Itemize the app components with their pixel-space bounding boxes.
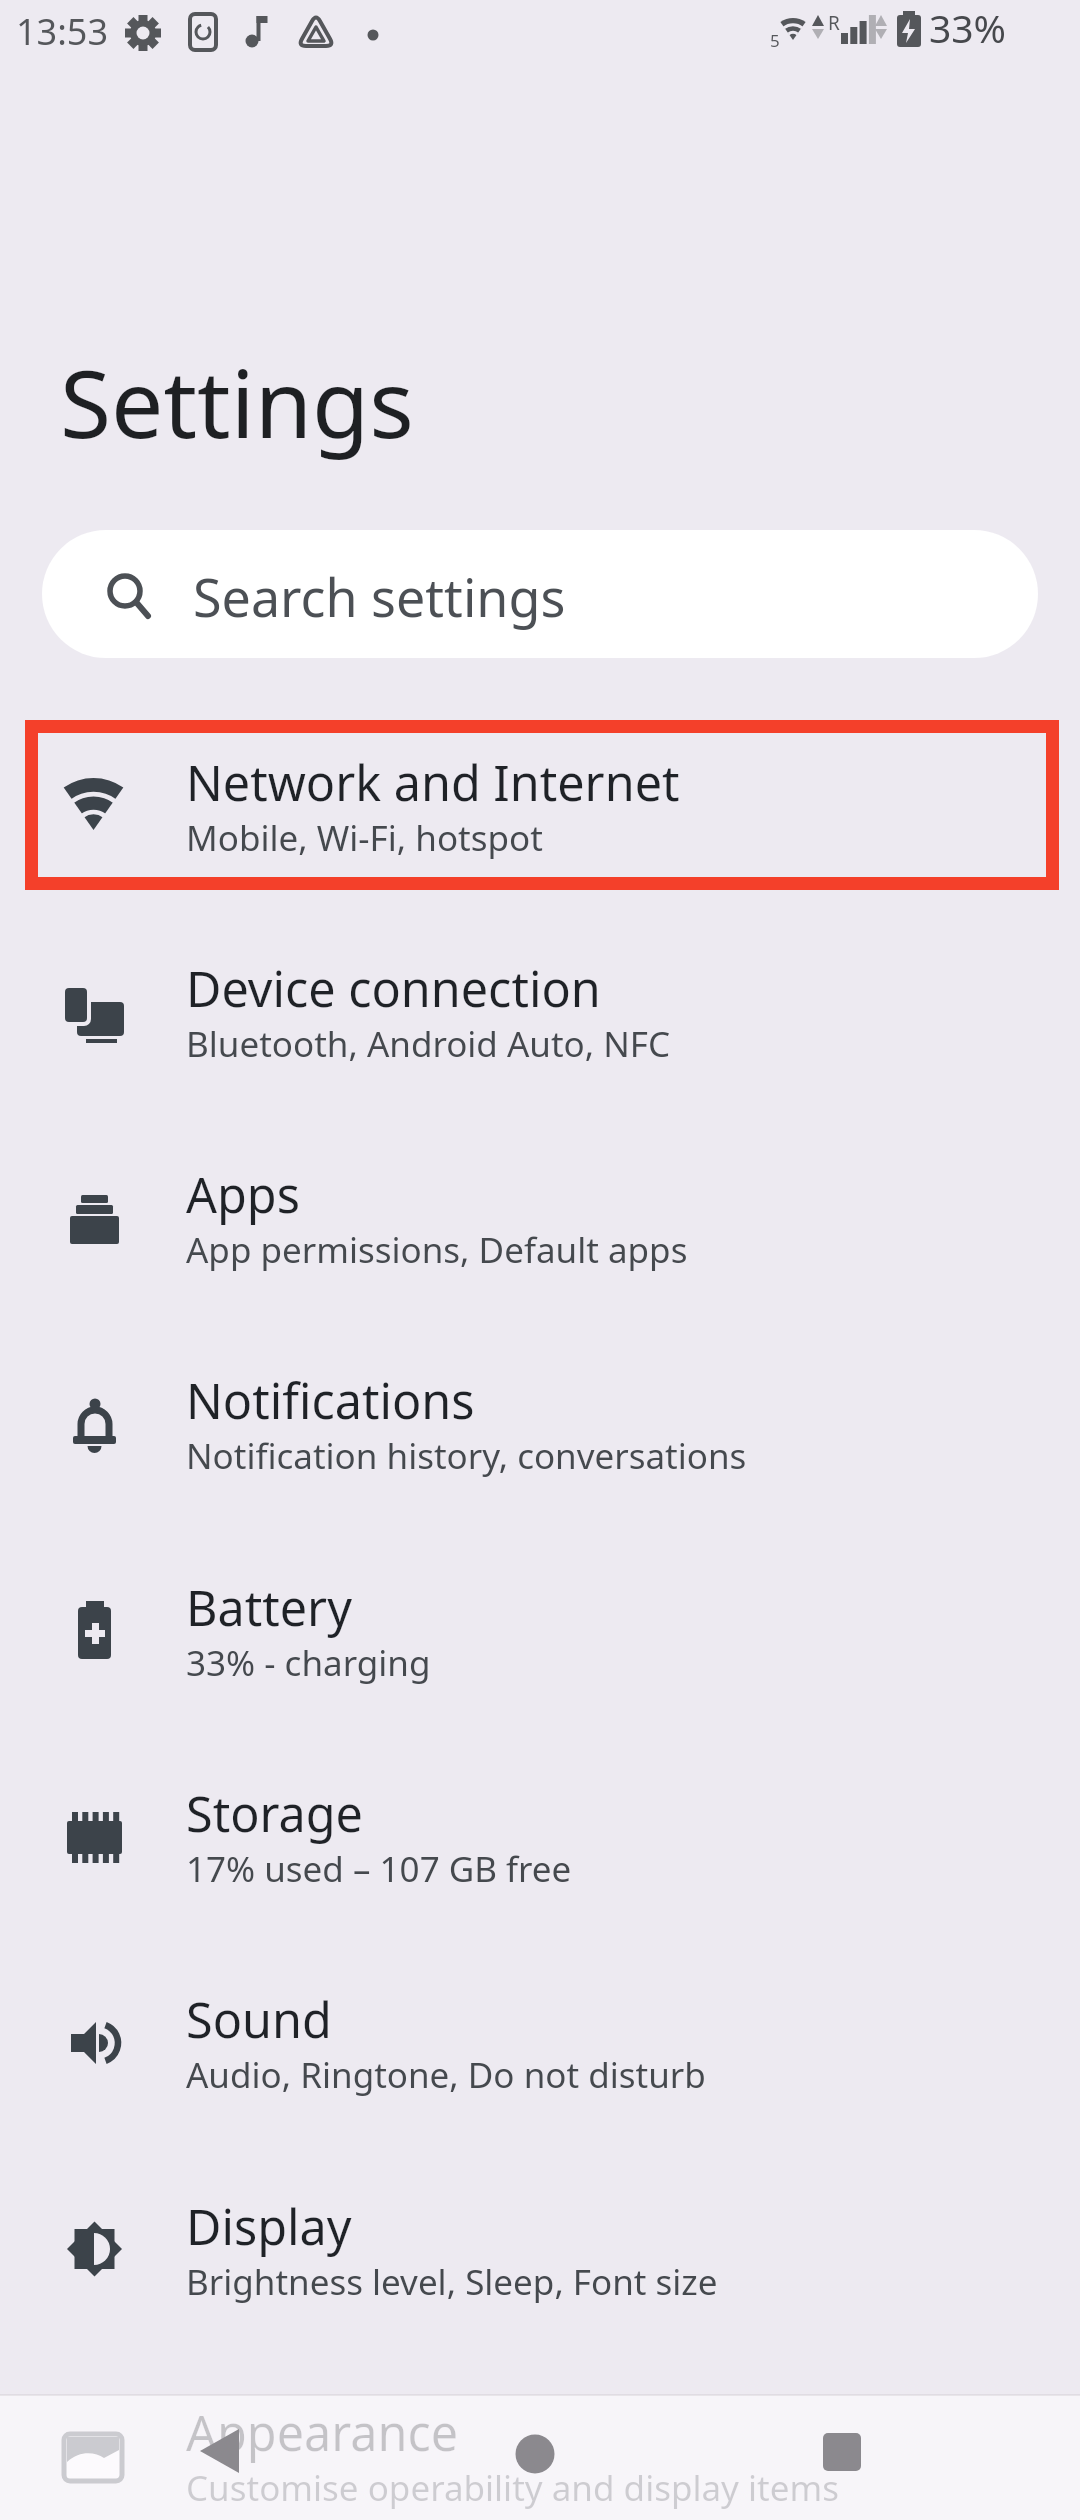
button[interactable]: Display xyxy=(0,2156,1080,2362)
button[interactable]: Appearance xyxy=(0,2362,1080,2520)
button[interactable]: Sound xyxy=(0,1949,1080,2155)
staticText: Customise operability and display items xyxy=(186,2464,839,2512)
staticText: Apps xyxy=(186,1161,300,1227)
button[interactable]: Search settings xyxy=(42,530,1038,658)
button[interactable] xyxy=(755,2400,935,2510)
staticText: Bluetooth, Android Auto, NFC xyxy=(186,1020,671,1068)
staticText: Notification history, conversations xyxy=(186,1432,747,1480)
button[interactable] xyxy=(130,2400,310,2510)
staticText: Sound xyxy=(186,1986,332,2052)
button[interactable]: Apps xyxy=(0,1124,1080,1330)
staticText: Storage xyxy=(186,1780,363,1846)
button[interactable]: Device connection xyxy=(0,918,1080,1124)
staticText: 13:53 xyxy=(16,7,109,56)
staticText: Search settings xyxy=(193,561,566,632)
button[interactable]: Storage xyxy=(0,1743,1080,1949)
staticText: 5 xyxy=(770,29,780,52)
staticText: 17% used – 107 GB free xyxy=(186,1845,572,1893)
staticText: Notifications xyxy=(186,1367,475,1433)
staticText: Network and Internet xyxy=(186,749,680,815)
staticText: App permissions, Default apps xyxy=(186,1226,688,1274)
staticText: Battery xyxy=(186,1574,352,1640)
staticText: 33% - charging xyxy=(186,1639,431,1687)
staticText: Appearance xyxy=(186,2399,459,2465)
button[interactable]: Battery xyxy=(0,1537,1080,1743)
staticText: Mobile, Wi-Fi, hotspot xyxy=(186,814,543,862)
button[interactable]: Network and Internet xyxy=(0,712,1080,918)
button[interactable]: Notifications xyxy=(0,1330,1080,1536)
staticText: Audio, Ringtone, Do not disturb xyxy=(186,2051,706,2099)
button[interactable] xyxy=(445,2400,625,2510)
staticText: Brightness level, Sleep, Font size xyxy=(186,2258,718,2306)
staticText: Device connection xyxy=(186,955,601,1021)
staticText: 33% xyxy=(929,1,1007,54)
staticText: Settings xyxy=(60,339,414,466)
staticText: R xyxy=(828,10,840,36)
staticText: Display xyxy=(186,2193,352,2259)
